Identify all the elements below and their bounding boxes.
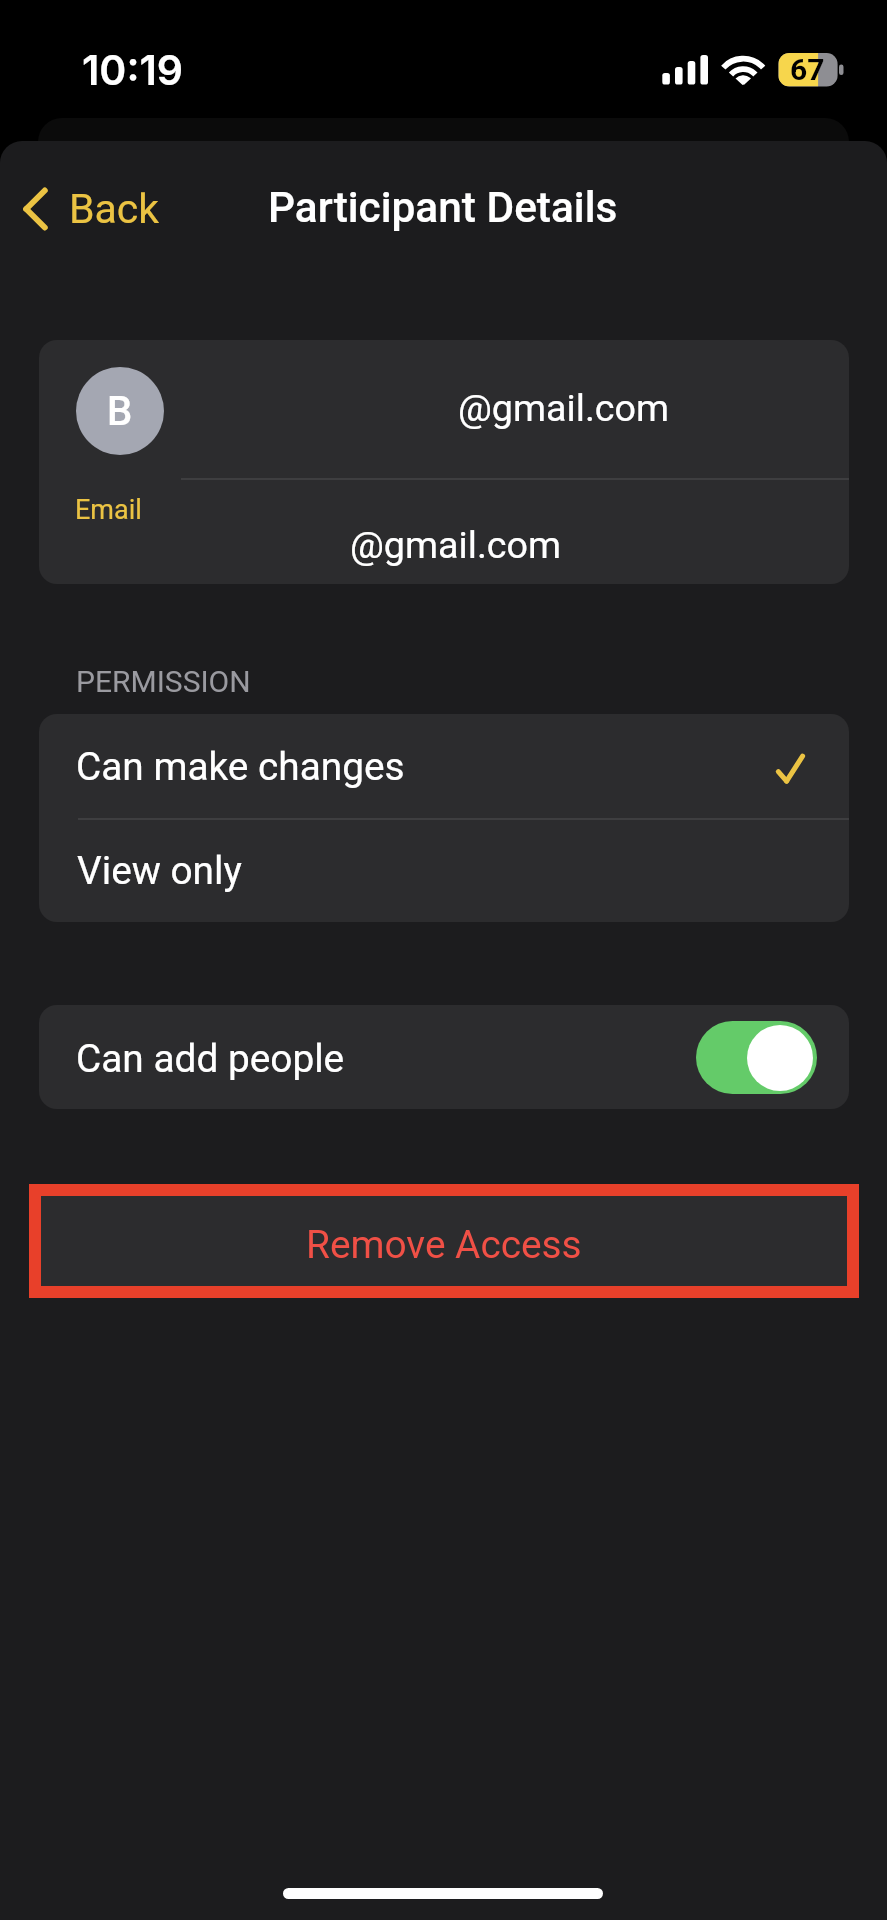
staticText: 67 [790,52,825,87]
staticText: B [107,388,133,435]
staticText: PERMISSION [76,664,251,699]
button[interactable]: Remove Access [29,1184,859,1298]
staticText: Back [69,185,160,233]
staticText: Email [75,494,142,526]
staticText: View only [77,848,242,893]
button[interactable]: Can add people [696,1021,817,1094]
other: Selected [771,748,811,788]
button[interactable]: Back [12,174,168,244]
staticText: Participant Details [268,183,618,233]
staticText: @gmail.com [458,386,670,430]
button[interactable]: View only [39,820,849,922]
staticText: @gmail.com [350,523,562,567]
button[interactable]: Can make changes [39,714,849,818]
staticText: Can add people [76,1036,345,1081]
staticText: 10:19 [82,45,184,95]
staticText: Remove Access [306,1222,582,1267]
staticText: Can make changes [76,744,405,789]
